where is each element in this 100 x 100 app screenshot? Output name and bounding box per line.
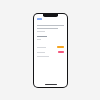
button[interactable] — [37, 51, 64, 53]
button[interactable] — [37, 46, 64, 48]
button[interactable]: Badge — [37, 18, 42, 20]
